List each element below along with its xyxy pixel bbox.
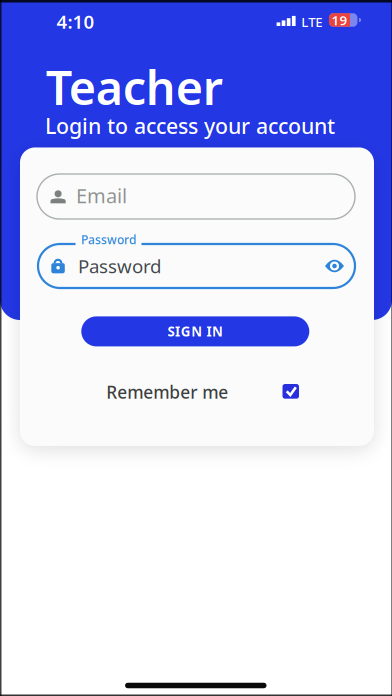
button[interactable]: Email <box>37 174 355 219</box>
staticText: Login to access your account <box>45 111 335 140</box>
staticText: 4:10 <box>56 9 94 34</box>
staticText: Password <box>81 231 136 247</box>
staticText: Password <box>78 253 161 278</box>
staticText: Remember me <box>106 380 228 403</box>
staticText: SIGN IN <box>167 322 223 340</box>
staticText: LTE <box>301 13 322 31</box>
button[interactable] <box>325 260 344 272</box>
staticText: 19 <box>331 11 347 29</box>
button[interactable]: SIGN IN <box>81 316 309 346</box>
button[interactable]: Remember me <box>106 380 297 403</box>
staticText: Teacher <box>46 56 223 118</box>
staticText: Email <box>76 182 127 209</box>
button[interactable]: Password <box>38 244 355 288</box>
